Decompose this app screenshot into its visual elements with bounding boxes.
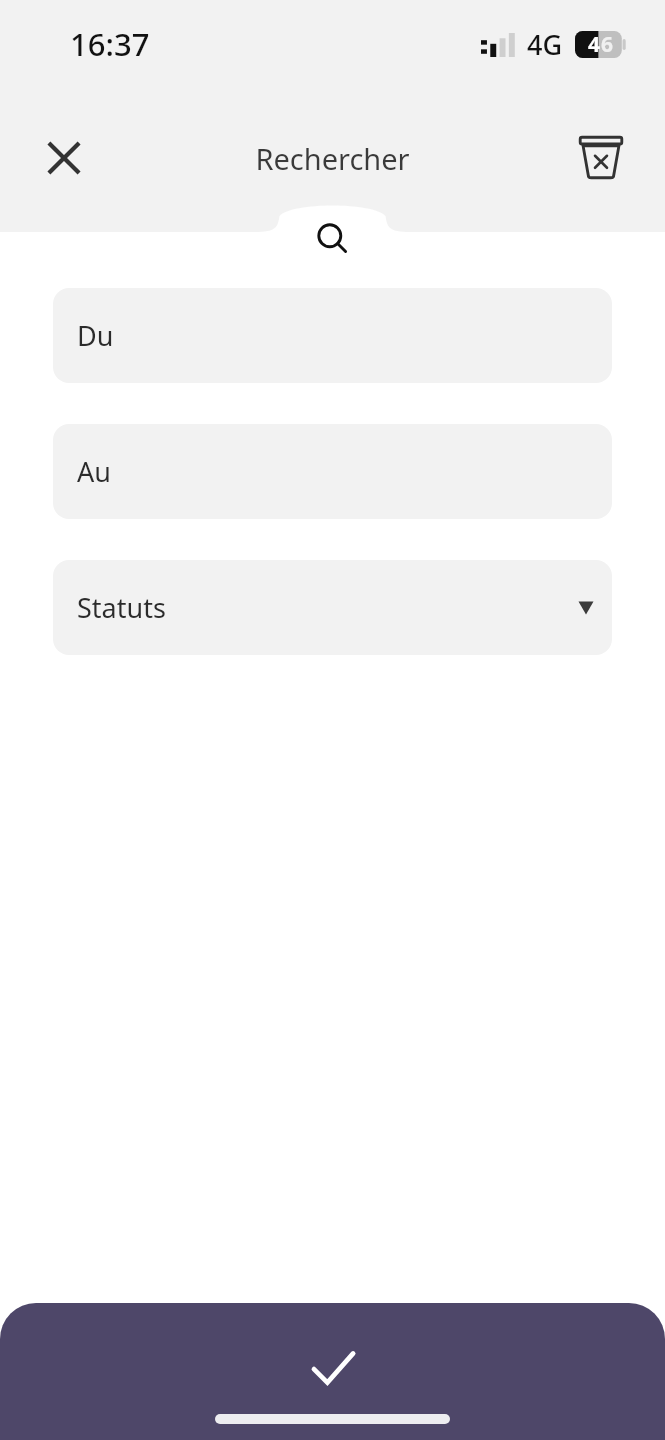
staticText: 4: [588, 30, 601, 59]
button[interactable]: Effacer: [561, 118, 641, 198]
button[interactable]: Du: [53, 288, 612, 383]
staticText: Du: [77, 317, 114, 354]
button[interactable]: Valider: [0, 1303, 665, 1440]
button[interactable]: Rechercher: [304, 210, 362, 268]
button[interactable]: Au: [53, 424, 612, 519]
staticText: 16:37: [70, 23, 150, 65]
button[interactable]: Fermer: [24, 118, 104, 198]
staticText: 6: [601, 30, 614, 59]
button[interactable]: Statuts: [53, 560, 612, 655]
staticText: Statuts: [77, 589, 166, 626]
staticText: Rechercher: [255, 139, 410, 178]
staticText: 4G: [527, 26, 563, 63]
staticText: Au: [77, 453, 111, 490]
